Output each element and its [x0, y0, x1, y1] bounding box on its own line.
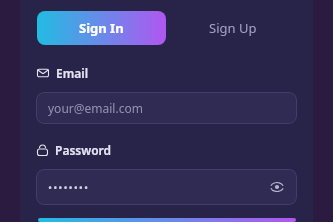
button[interactable]: •••••••• — [36, 169, 297, 205]
button[interactable]: Sign In — [37, 11, 166, 45]
staticText: Email — [56, 65, 89, 81]
staticText: •••••••• — [48, 180, 90, 195]
button[interactable]: Sign Up — [176, 11, 290, 45]
button[interactable]: Show password — [265, 175, 289, 199]
button[interactable]: your@email.com — [36, 92, 297, 124]
button[interactable]: Sign In — [38, 218, 296, 222]
staticText: your@email.com — [48, 100, 143, 116]
staticText: Sign Up — [209, 19, 257, 37]
staticText: Sign In — [79, 19, 124, 37]
staticText: Password — [55, 142, 112, 158]
